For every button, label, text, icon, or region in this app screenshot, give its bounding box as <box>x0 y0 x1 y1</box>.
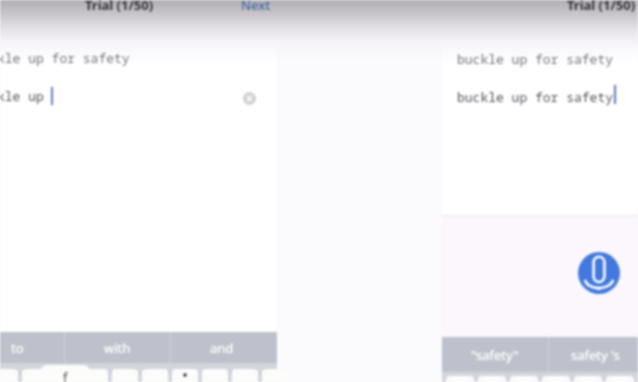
staticText: Trial (1/50) <box>85 0 154 14</box>
button[interactable]: Next <box>241 0 271 14</box>
staticText: f <box>63 368 68 382</box>
button[interactable] <box>574 376 602 382</box>
button[interactable] <box>0 369 18 382</box>
staticText: buckle up for safety <box>457 50 614 68</box>
staticText: kle up <box>0 87 44 105</box>
button[interactable]: and <box>176 332 268 363</box>
button[interactable] <box>142 369 168 382</box>
button[interactable] <box>446 376 474 382</box>
button[interactable] <box>606 376 634 382</box>
button[interactable]: to <box>0 332 63 363</box>
button[interactable]: Clear text <box>243 92 256 105</box>
button[interactable]: with <box>71 332 163 363</box>
button[interactable] <box>22 369 48 382</box>
button[interactable] <box>478 376 506 382</box>
staticText: "safety" <box>471 346 519 364</box>
staticText: Next <box>241 0 271 14</box>
button[interactable] <box>112 369 138 382</box>
staticText: Trial (1/50) <box>567 0 636 14</box>
button[interactable] <box>82 369 108 382</box>
button[interactable]: f <box>40 365 90 382</box>
staticText: safety 's <box>571 346 620 364</box>
button[interactable] <box>510 376 538 382</box>
staticText: and <box>210 339 234 357</box>
staticText: to <box>11 339 24 357</box>
button[interactable] <box>232 369 258 382</box>
staticText: buckle up for safety <box>457 88 614 106</box>
staticText: with <box>104 339 131 357</box>
staticText: kle up for safety <box>0 49 130 67</box>
button[interactable] <box>542 376 570 382</box>
button[interactable] <box>202 369 228 382</box>
button[interactable] <box>262 369 288 382</box>
button[interactable]: Voice input <box>578 252 620 294</box>
button[interactable]: "safety" <box>449 337 541 372</box>
button[interactable]: safety 's <box>549 337 638 372</box>
button[interactable] <box>172 369 198 382</box>
